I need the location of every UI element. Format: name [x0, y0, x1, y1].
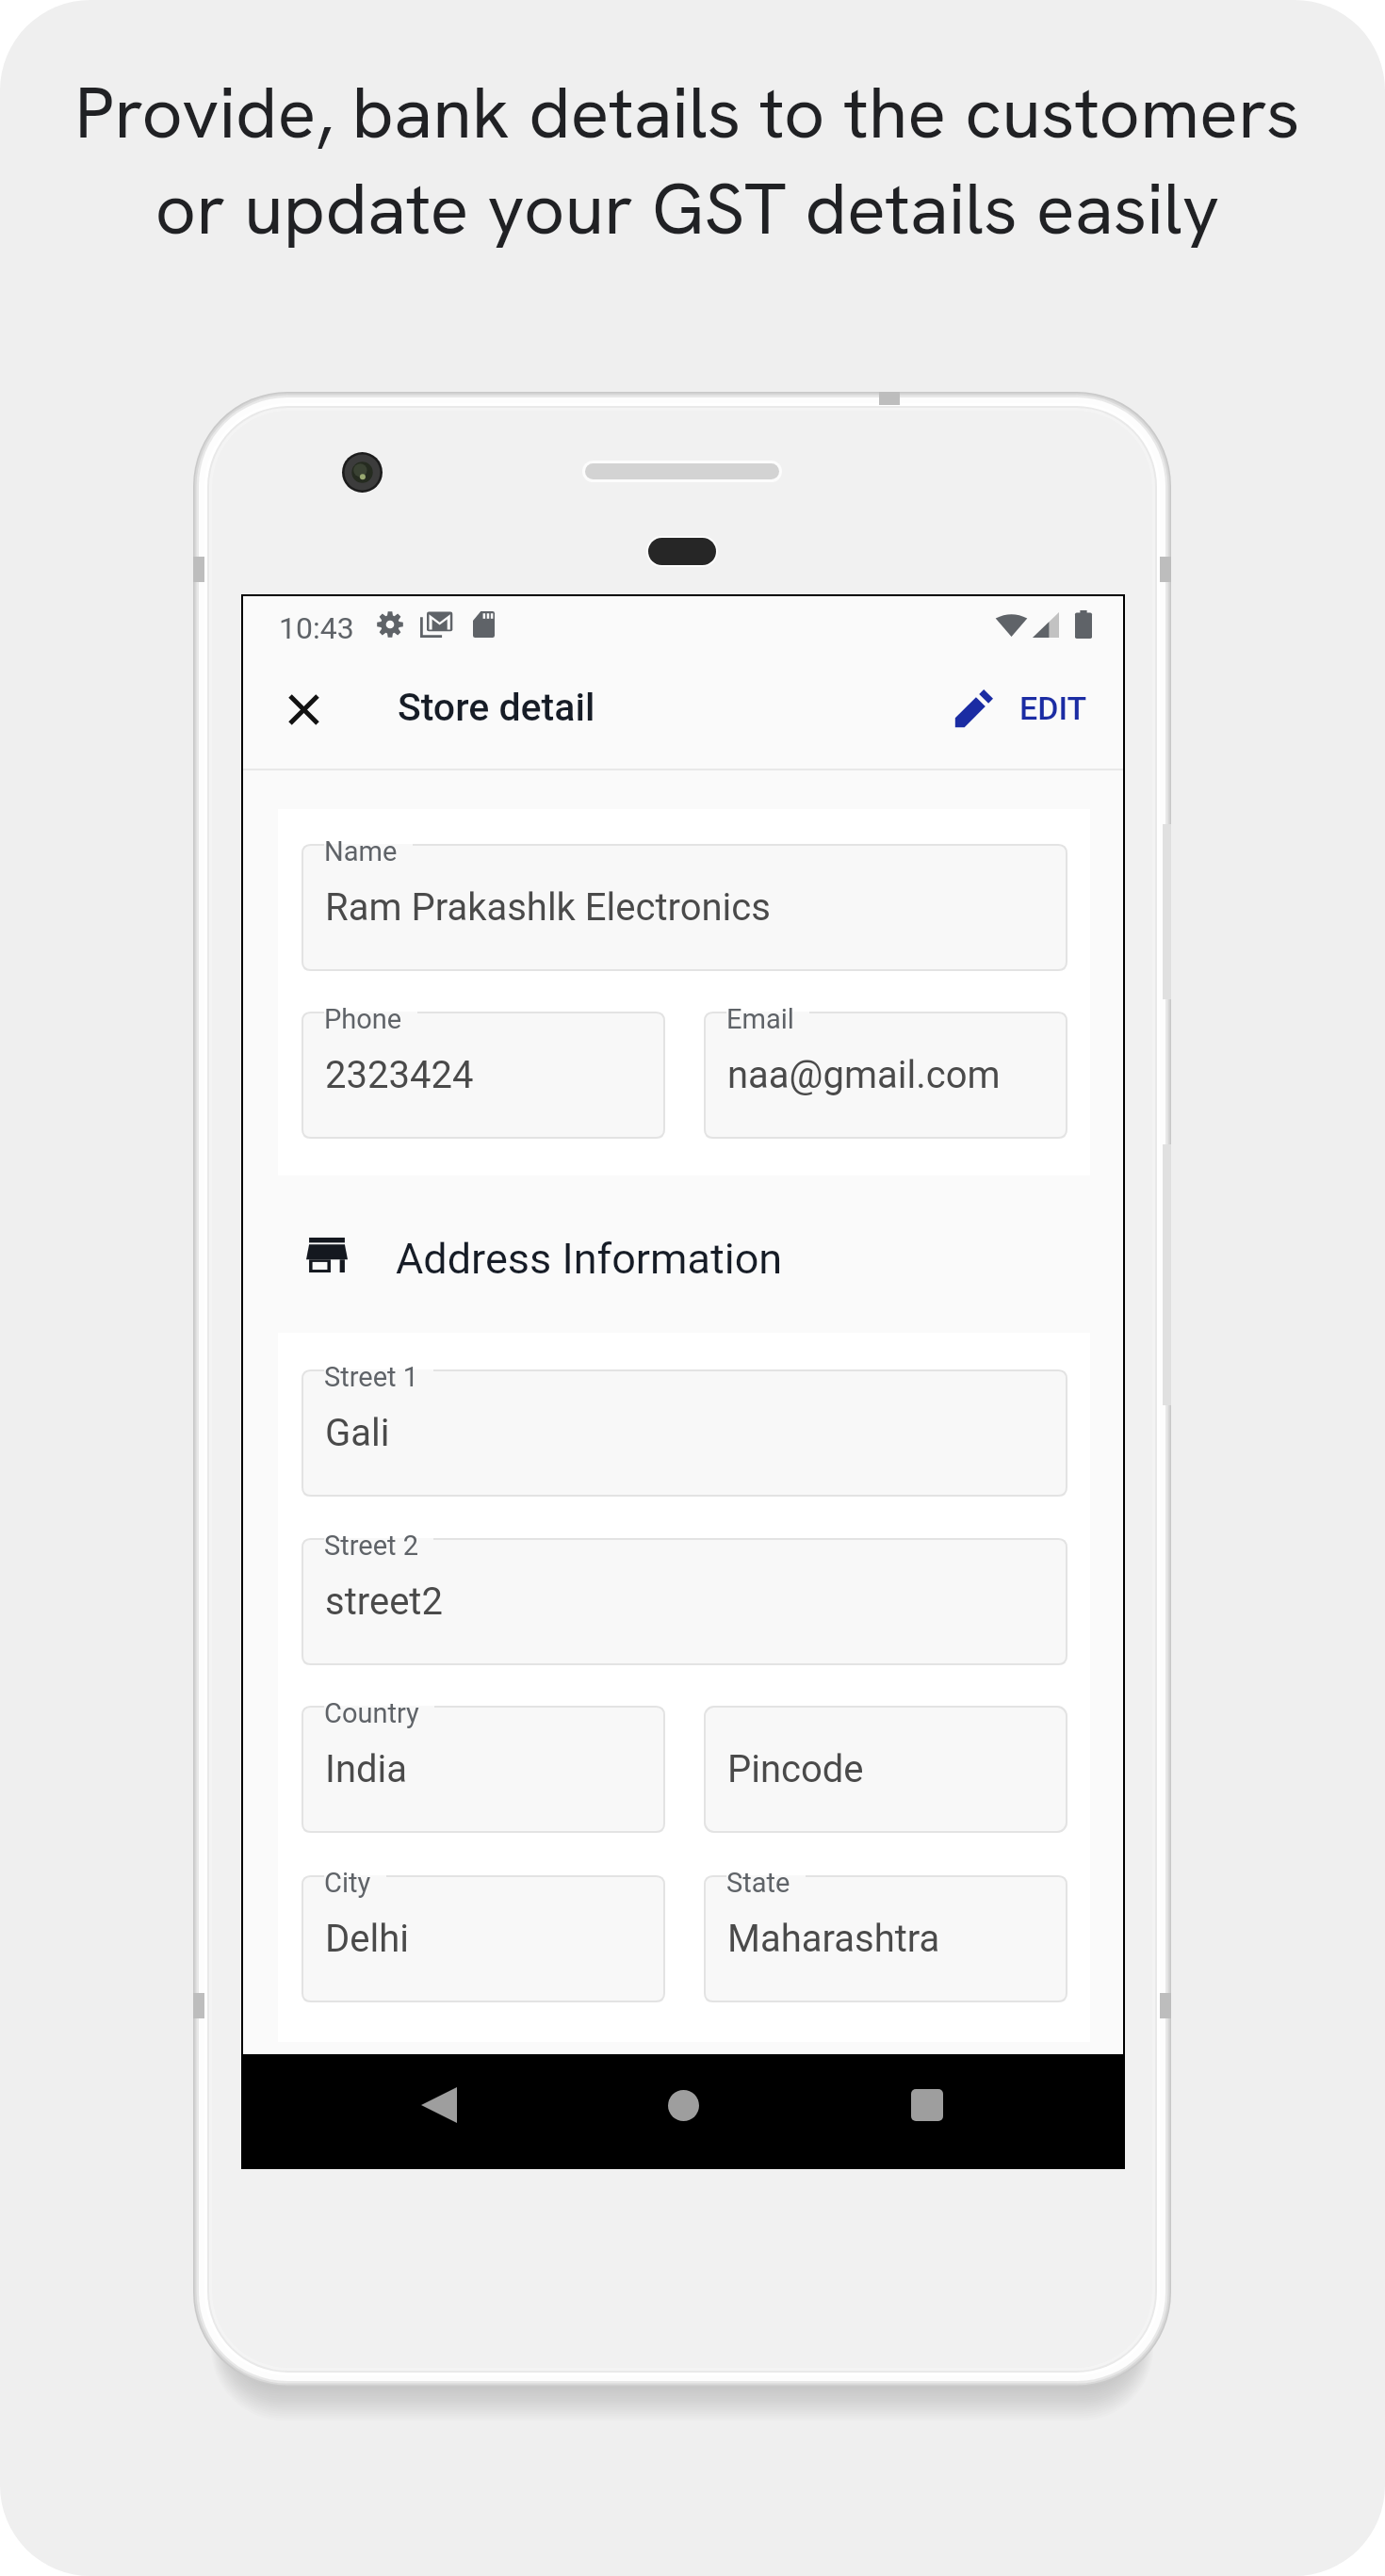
staticText: Maharashtra: [727, 1917, 940, 1961]
button[interactable]: City: [301, 1875, 665, 2002]
staticText: Gali: [325, 1411, 390, 1455]
staticText: street2: [325, 1580, 443, 1624]
staticText: 10:43: [279, 610, 354, 646]
staticText: Country: [324, 1697, 419, 1729]
button[interactable]: Street 2: [301, 1538, 1067, 1665]
staticText: Phone: [324, 1003, 402, 1035]
staticText: City: [324, 1867, 371, 1899]
staticText: Ram Prakashlk Electronics: [325, 885, 771, 930]
staticText: EDIT: [1019, 689, 1087, 727]
staticText: India: [325, 1747, 408, 1791]
button[interactable]: Phone: [301, 1012, 665, 1139]
button[interactable]: Address Information: [306, 1234, 783, 1275]
button[interactable]: Home: [629, 2054, 738, 2167]
staticText: Name: [324, 835, 398, 867]
staticText: Delhi: [325, 1917, 409, 1961]
staticText: Street 2: [324, 1530, 418, 1562]
staticText: 2323424: [325, 1053, 474, 1097]
button[interactable]: Back: [384, 2054, 493, 2167]
staticText: Provide, bank details to the customers o…: [74, 66, 1300, 255]
staticText: naa@gmail.com: [727, 1053, 1001, 1097]
button[interactable]: Country: [301, 1706, 665, 1833]
button[interactable]: Name: [301, 844, 1067, 971]
button[interactable]: Street 1: [301, 1369, 1067, 1497]
staticText: Address Information: [396, 1234, 783, 1275]
button[interactable]: State: [704, 1875, 1067, 2002]
button[interactable]: Pincode: [704, 1706, 1067, 1833]
button[interactable]: Recent apps: [872, 2054, 981, 2167]
button[interactable]: Close: [276, 682, 331, 737]
staticText: Store detail: [398, 685, 595, 730]
staticText: State: [726, 1867, 790, 1899]
staticText: Email: [726, 1003, 794, 1035]
staticText: Pincode: [727, 1747, 864, 1791]
staticText: Street 1: [324, 1361, 418, 1393]
button[interactable]: EDIT: [945, 673, 1097, 743]
button[interactable]: Email: [704, 1012, 1067, 1139]
